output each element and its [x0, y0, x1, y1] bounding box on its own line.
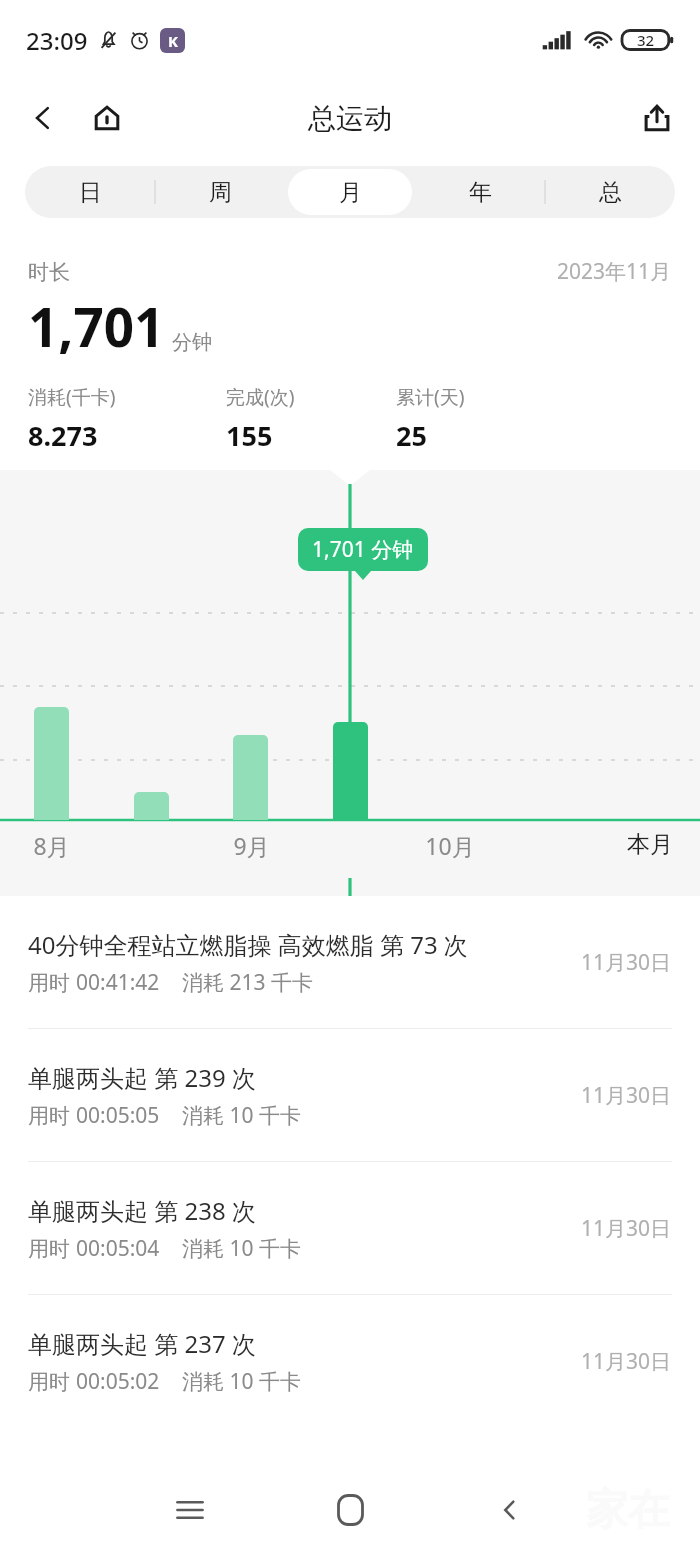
button[interactable]: 单腿两头起 第 239 次	[0, 1029, 700, 1161]
staticText: 11月30日	[581, 1081, 672, 1110]
staticText: 年	[469, 178, 492, 207]
staticText: K	[168, 31, 178, 51]
staticText: 消耗 10 千卡	[182, 1101, 301, 1130]
staticText: 11月30日	[581, 1214, 672, 1243]
button[interactable]: 单腿两头起 第 237 次	[0, 1295, 700, 1427]
staticText: 00:41:42	[76, 968, 160, 997]
staticText: 32	[637, 30, 655, 50]
staticText: 11月30日	[581, 948, 672, 977]
staticText: 本月	[627, 830, 673, 859]
staticText: 用时	[28, 1234, 76, 1263]
staticText: 总	[599, 178, 622, 207]
staticText: 周	[209, 178, 232, 207]
button[interactable]: Home	[318, 1478, 382, 1542]
staticText: 1,701 分钟	[312, 535, 414, 564]
staticText: 2023年11月	[557, 257, 672, 286]
staticText: 单腿两头起 第 238 次	[28, 1194, 256, 1227]
staticText: 分钟	[172, 330, 212, 355]
staticText: 消耗 10 千卡	[182, 1234, 301, 1263]
button[interactable]: Back	[16, 91, 70, 145]
staticText: 用时	[28, 968, 76, 997]
button[interactable]: 日	[28, 169, 152, 215]
staticText: 8.273	[28, 417, 98, 454]
staticText: 单腿两头起 第 239 次	[28, 1061, 256, 1094]
button[interactable]: 单腿两头起 第 238 次	[0, 1162, 700, 1294]
staticText: 消耗(千卡)	[28, 384, 116, 410]
staticText: 完成(次)	[226, 384, 295, 410]
staticText: 用时	[28, 1101, 76, 1130]
staticText: 月	[339, 178, 362, 207]
button[interactable]: 周	[158, 169, 282, 215]
staticText: 23:09	[26, 24, 88, 57]
staticText: 155	[226, 417, 273, 454]
staticText: 消耗 213 千卡	[182, 968, 313, 997]
staticText: 用时	[28, 1367, 76, 1396]
staticText: 总运动	[308, 101, 392, 136]
staticText: 消耗 10 千卡	[182, 1367, 301, 1396]
staticText: 9月	[233, 830, 270, 861]
staticText: 25	[396, 417, 427, 454]
staticText: 日	[79, 178, 102, 207]
button[interactable]: 40分钟全程站立燃脂操 高效燃脂 第 73 次	[0, 896, 700, 1028]
button[interactable]: Home	[80, 91, 134, 145]
staticText: 11月30日	[581, 1347, 672, 1376]
staticText: 时长	[28, 259, 70, 285]
staticText: 00:05:02	[76, 1367, 160, 1396]
button[interactable]: 总	[548, 169, 672, 215]
staticText: 累计(天)	[396, 384, 465, 410]
staticText: 00:05:05	[76, 1101, 160, 1130]
button[interactable]: 年	[418, 169, 542, 215]
staticText: 10月	[425, 830, 475, 861]
staticText: 00:05:04	[76, 1234, 160, 1263]
staticText: 8月	[33, 830, 70, 861]
button[interactable]: 月	[288, 169, 412, 215]
staticText: 单腿两头起 第 237 次	[28, 1327, 256, 1360]
button[interactable]: Share	[630, 91, 684, 145]
staticText: 1,701	[28, 290, 165, 362]
button[interactable]: Recents	[158, 1478, 222, 1542]
staticText: 40分钟全程站立燃脂操 高效燃脂 第 73 次	[28, 928, 468, 961]
button[interactable]: Back	[478, 1478, 542, 1542]
